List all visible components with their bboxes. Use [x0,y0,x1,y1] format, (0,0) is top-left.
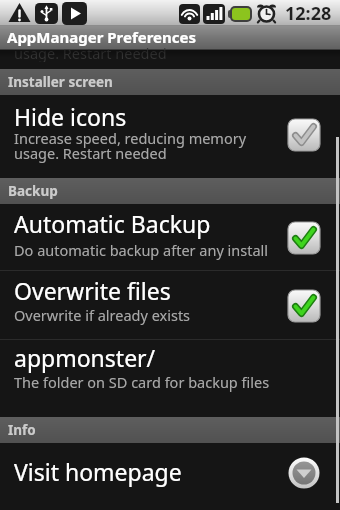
staticText: Automatic Backup [14,208,211,239]
button[interactable]: Automatic Backup [0,204,340,271]
button[interactable]: Visit homepage [0,443,340,510]
staticText: AppManager Preferences [7,27,197,47]
staticText: Increase speed, reducing memory usage. R… [14,128,247,163]
button[interactable]: appmonster/ [0,340,340,417]
staticText: usage. Restart needed [14,43,167,62]
staticText: appmonster/ [14,342,156,373]
staticText: Visit homepage [14,456,182,487]
staticText: Installer screen [8,73,113,91]
staticText: Overwrite files [14,275,171,306]
staticText: Overwrite if already exists [14,305,191,325]
staticText: Backup [8,182,58,200]
staticText: 12:28 [285,1,332,26]
staticText: Do automatic backup after any install [14,240,269,260]
staticText: The folder on SD card for backup files [14,372,270,392]
button[interactable]: Hide icons [0,95,340,178]
button[interactable]: Overwrite files [0,271,340,340]
staticText: Info [8,421,36,439]
staticText: Hide icons [14,101,127,132]
